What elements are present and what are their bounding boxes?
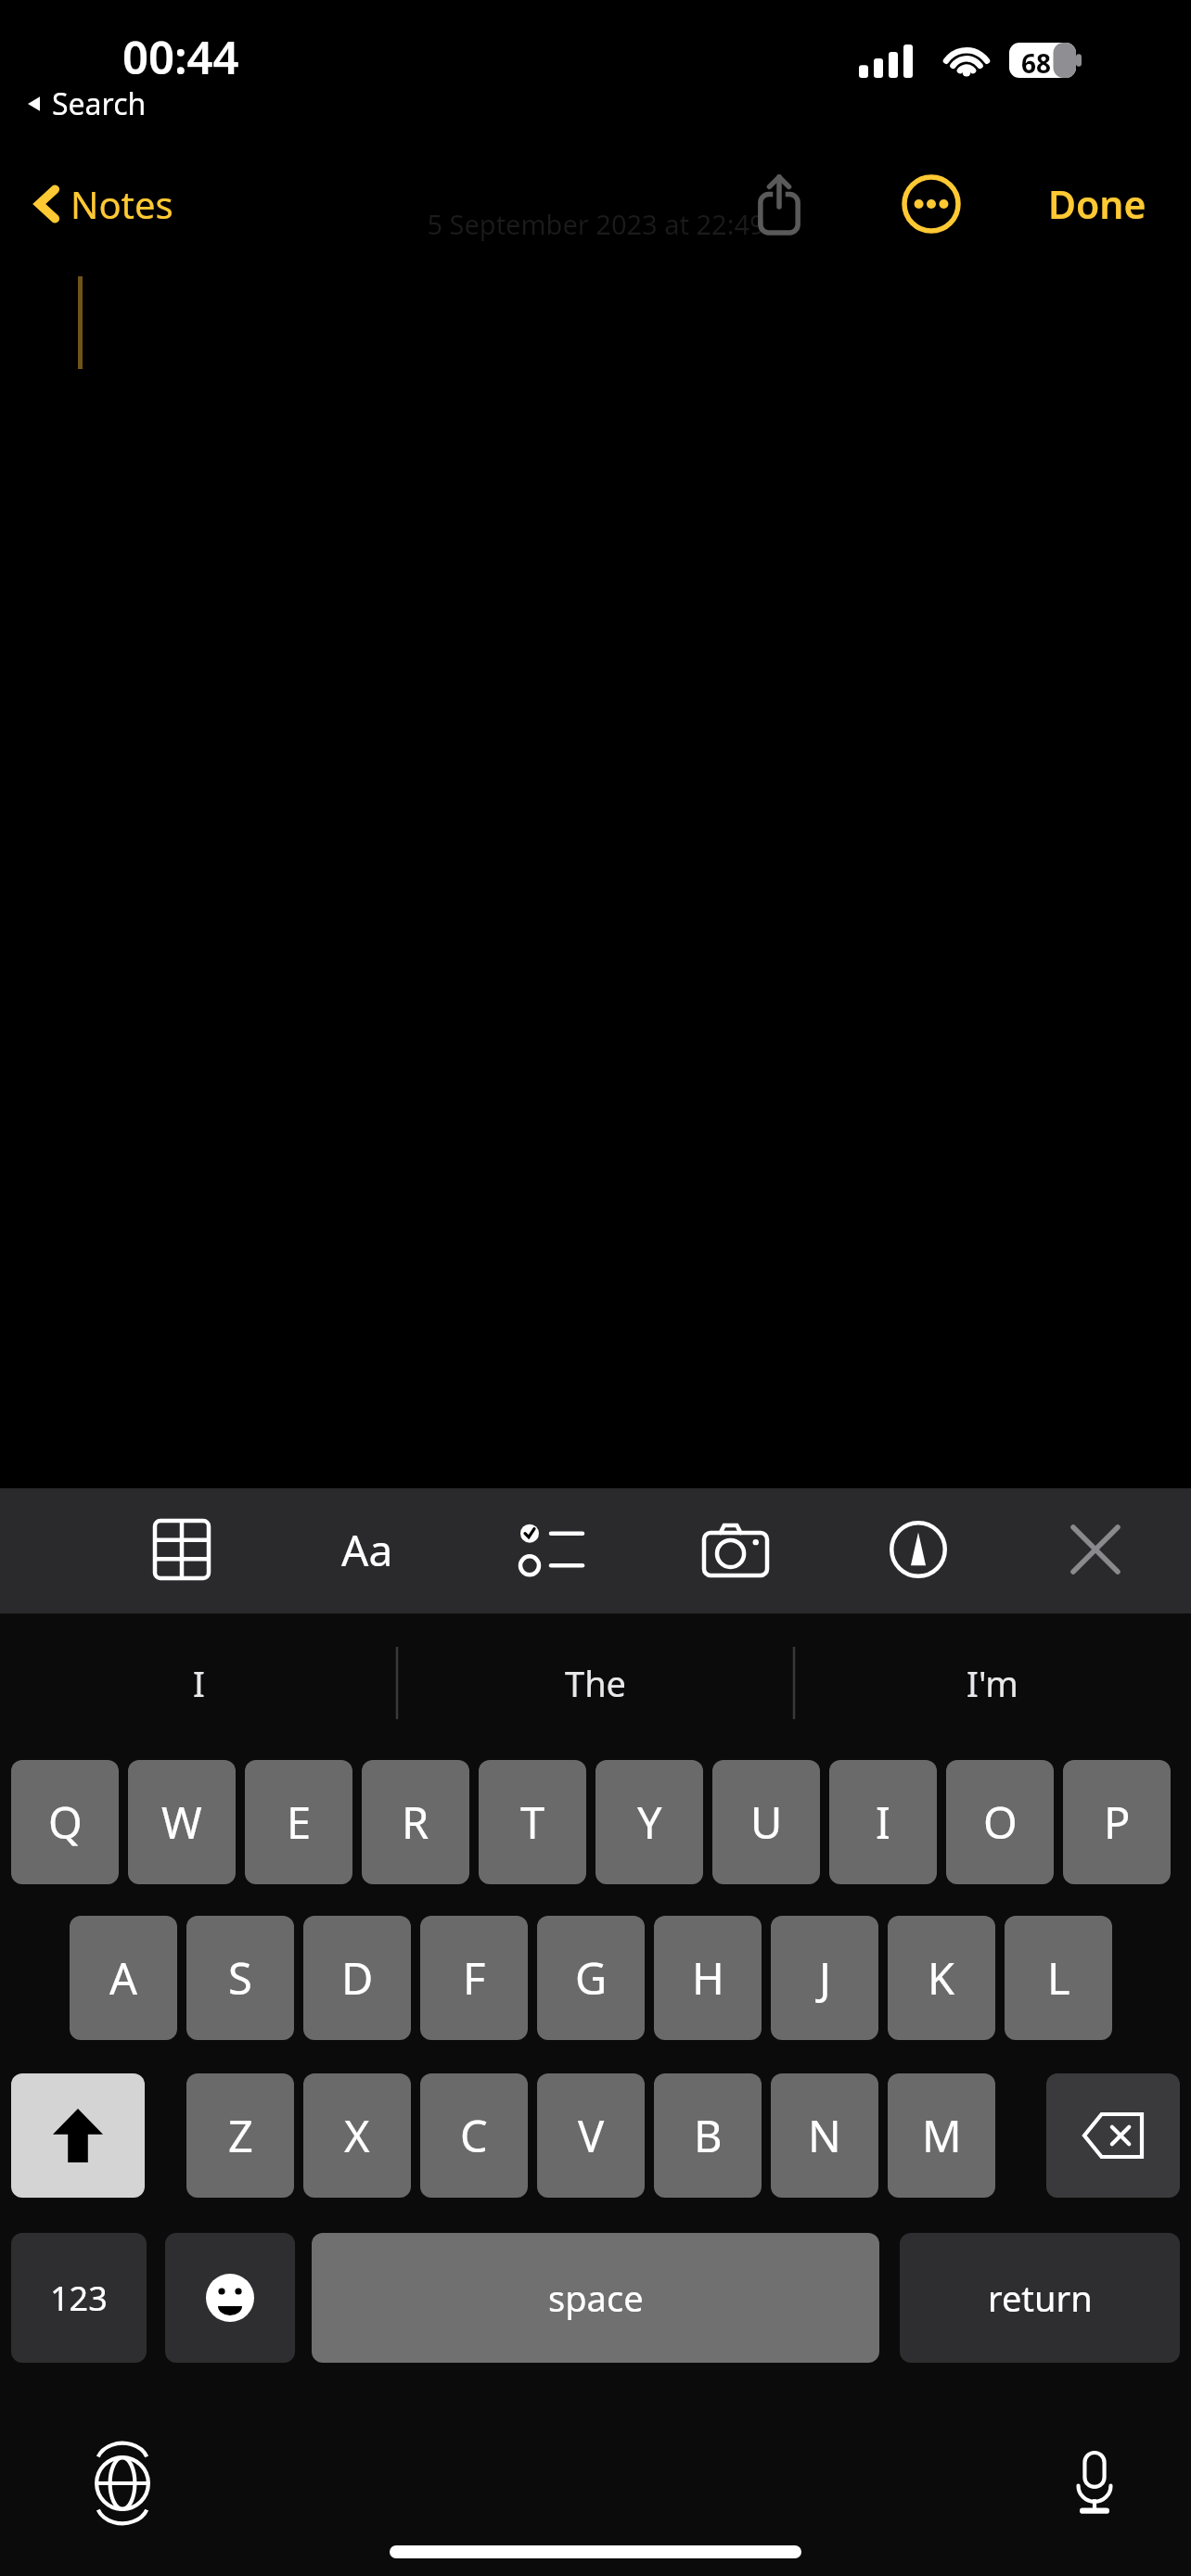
button[interactable]: C <box>420 2073 528 2198</box>
button[interactable]: U <box>712 1760 820 1884</box>
staticText: Notes <box>70 179 173 229</box>
staticText: 00:44 <box>122 26 239 88</box>
button[interactable]: W <box>128 1760 236 1884</box>
staticText: V <box>578 2106 605 2165</box>
button[interactable]: return <box>900 2233 1180 2363</box>
button[interactable]: The <box>397 1613 794 1753</box>
staticText: O <box>983 1792 1018 1852</box>
staticText: M <box>922 2106 962 2165</box>
button[interactable]: Format text <box>323 1505 412 1594</box>
staticText: P <box>1104 1792 1131 1852</box>
button[interactable]: 123 <box>11 2233 147 2363</box>
staticText: Y <box>637 1792 662 1852</box>
staticText: I <box>193 1659 205 1707</box>
staticText: E <box>287 1792 312 1852</box>
button[interactable]: Q <box>11 1760 119 1884</box>
button[interactable]: Table <box>137 1505 226 1594</box>
button[interactable]: Share <box>742 162 816 246</box>
staticText: W <box>161 1792 202 1852</box>
staticText: N <box>808 2106 841 2165</box>
button[interactable]: Done <box>1043 169 1152 239</box>
staticText: K <box>928 1948 955 2008</box>
staticText: I'm <box>967 1659 1018 1707</box>
button[interactable]: Search <box>24 82 148 126</box>
staticText: R <box>402 1792 429 1852</box>
button[interactable]: Notes <box>32 172 177 236</box>
button[interactable]: Z <box>186 2073 294 2198</box>
button[interactable]: Emoji <box>165 2233 295 2363</box>
button[interactable]: E <box>245 1760 352 1884</box>
staticText: H <box>692 1948 724 2008</box>
button[interactable]: J <box>771 1916 878 2040</box>
button[interactable]: Dictation <box>1050 2439 1139 2528</box>
button[interactable]: F <box>420 1916 528 2040</box>
staticText: I <box>876 1792 890 1852</box>
staticText: Aa <box>341 1521 393 1579</box>
staticText: S <box>228 1948 252 2008</box>
button[interactable]: P <box>1063 1760 1171 1884</box>
button[interactable]: Close keyboard <box>1051 1505 1140 1594</box>
button[interactable]: N <box>771 2073 878 2198</box>
staticText: The <box>565 1659 627 1707</box>
staticText: G <box>575 1948 608 2008</box>
staticText: L <box>1047 1948 1070 2008</box>
staticText: 68 <box>1021 45 1052 81</box>
button[interactable]: O <box>946 1760 1054 1884</box>
button[interactable]: space <box>312 2233 879 2363</box>
button[interactable]: I <box>829 1760 937 1884</box>
button[interactable]: K <box>888 1916 995 2040</box>
button[interactable]: M <box>888 2073 995 2198</box>
button[interactable]: Backspace <box>1046 2073 1180 2198</box>
staticText: Done <box>1048 178 1146 230</box>
button[interactable]: V <box>537 2073 645 2198</box>
staticText: J <box>819 1948 831 2008</box>
button[interactable]: Markup <box>874 1505 963 1594</box>
button[interactable]: B <box>654 2073 762 2198</box>
button[interactable]: Y <box>595 1760 703 1884</box>
staticText: Q <box>48 1792 83 1852</box>
staticText: D <box>341 1948 374 2008</box>
button[interactable]: R <box>362 1760 469 1884</box>
button[interactable]: A <box>70 1916 177 2040</box>
button[interactable]: I'm <box>794 1613 1191 1753</box>
staticText: return <box>988 2274 1093 2322</box>
staticText: T <box>520 1792 545 1852</box>
staticText: X <box>344 2106 370 2165</box>
button[interactable]: S <box>186 1916 294 2040</box>
staticText: 5 September 2023 at 22:49 <box>427 206 765 242</box>
button[interactable]: T <box>479 1760 586 1884</box>
button[interactable]: Change keyboard <box>78 2439 167 2528</box>
button[interactable]: Camera <box>691 1505 780 1594</box>
button[interactable]: D <box>303 1916 411 2040</box>
button[interactable]: L <box>1005 1916 1112 2040</box>
staticText: C <box>460 2106 488 2165</box>
button[interactable]: Checklist <box>506 1505 595 1594</box>
staticText: 123 <box>50 2276 108 2321</box>
staticText: Z <box>228 2106 253 2165</box>
staticText: B <box>694 2106 723 2165</box>
button[interactable]: H <box>654 1916 762 2040</box>
staticText: U <box>750 1792 783 1852</box>
staticText: F <box>463 1948 486 2008</box>
staticText: A <box>109 1948 138 2008</box>
staticText: Search <box>52 83 147 124</box>
button[interactable]: I <box>0 1613 397 1753</box>
button[interactable]: G <box>537 1916 645 2040</box>
button[interactable]: X <box>303 2073 411 2198</box>
button[interactable]: Shift <box>11 2073 145 2198</box>
button[interactable]: More options <box>892 165 970 243</box>
staticText: space <box>548 2274 644 2322</box>
